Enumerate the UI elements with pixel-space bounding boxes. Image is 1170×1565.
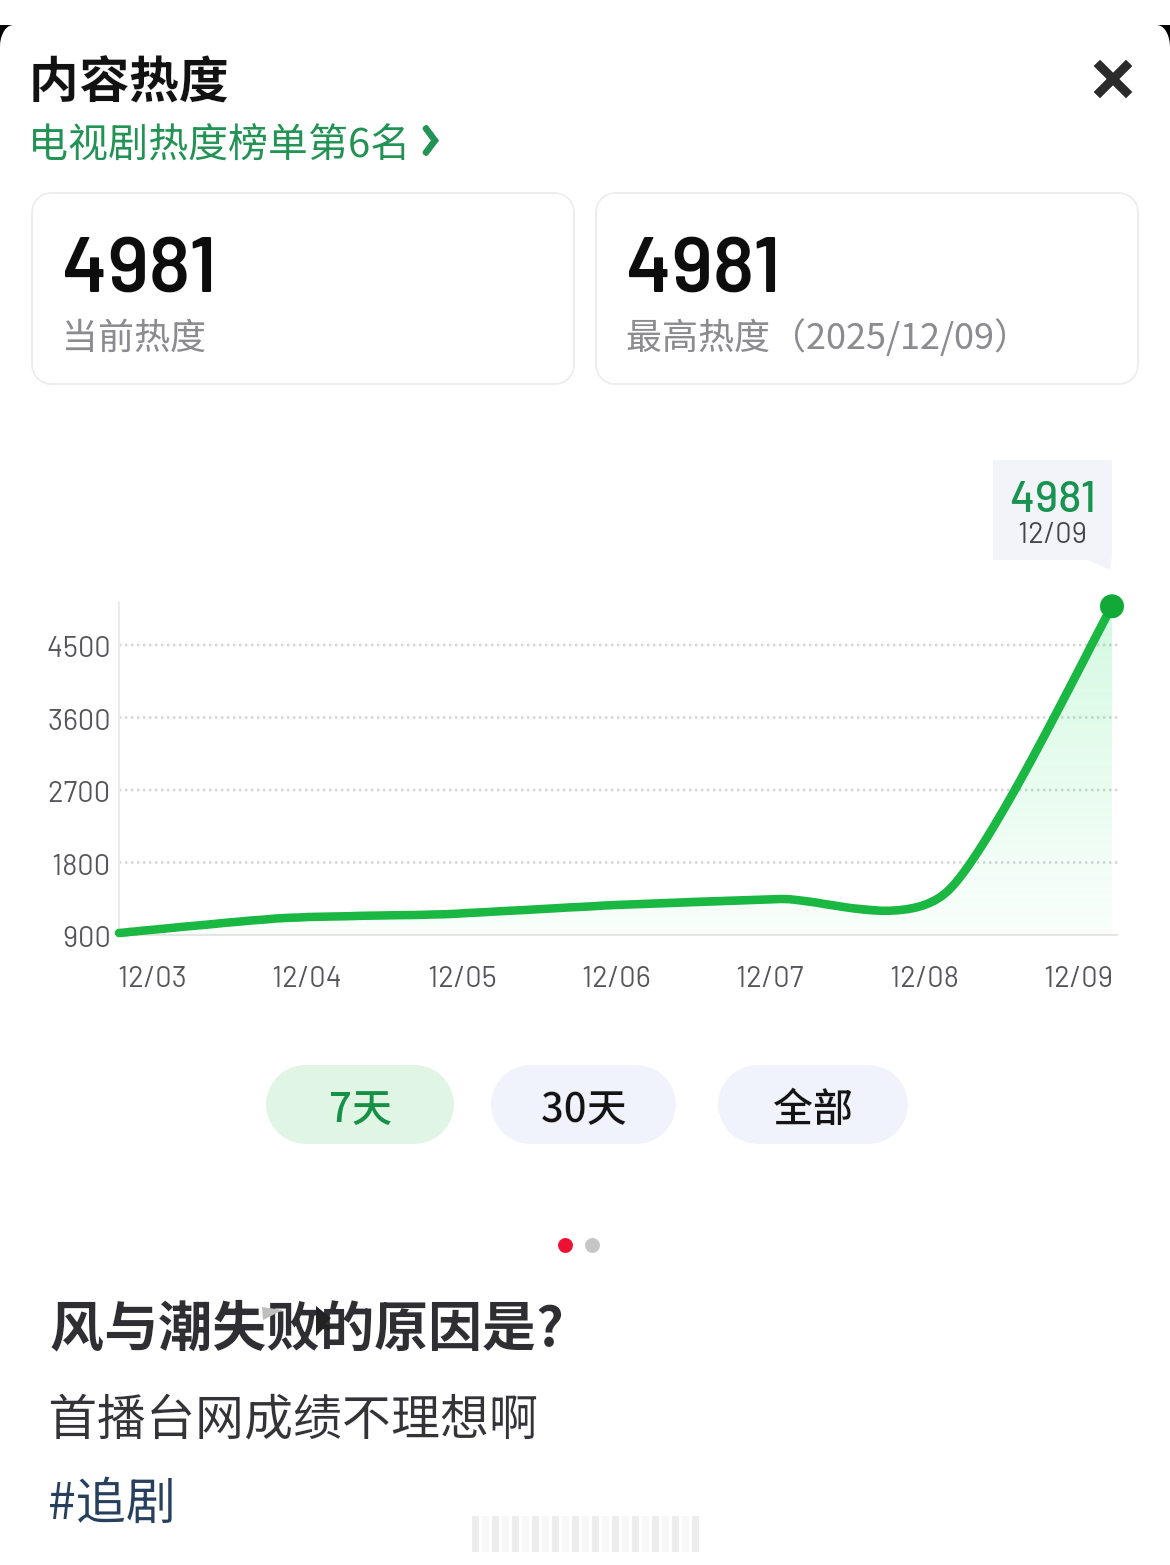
staticText: 首播台网成绩不理想啊 bbox=[48, 1378, 539, 1449]
staticText: 7天 bbox=[329, 1076, 392, 1134]
button[interactable]: #追剧 bbox=[48, 1461, 176, 1533]
staticText: 12/09 bbox=[1044, 958, 1113, 993]
staticText: 全部 bbox=[773, 1076, 853, 1134]
staticText: 12/03 bbox=[118, 958, 187, 993]
staticText: 电视剧热度榜单第6名 bbox=[28, 111, 411, 169]
staticText: 4981 bbox=[1010, 468, 1096, 521]
staticText: 3600 bbox=[48, 701, 111, 736]
staticText: 12/08 bbox=[890, 958, 959, 993]
staticText: 4981 bbox=[626, 214, 781, 308]
button[interactable]: 全部 bbox=[718, 1065, 908, 1144]
staticText: 最高热度（2025/12/09） bbox=[626, 307, 1031, 359]
staticText: 12/05 bbox=[428, 958, 497, 993]
staticText: 12/07 bbox=[736, 958, 804, 993]
staticText: 4981 bbox=[62, 214, 217, 308]
staticText: 12/06 bbox=[582, 958, 651, 993]
button[interactable]: 7天 bbox=[266, 1065, 454, 1144]
staticText: 1800 bbox=[52, 846, 111, 881]
staticText: 30天 bbox=[541, 1076, 627, 1134]
staticText: 4500 bbox=[47, 628, 111, 663]
staticText: 900 bbox=[63, 918, 111, 953]
staticText: 12/09 bbox=[1018, 514, 1087, 549]
button[interactable]: 4981 bbox=[595, 192, 1139, 385]
staticText: 当前热度 bbox=[62, 307, 207, 359]
button[interactable]: 4981 bbox=[31, 192, 575, 385]
staticText: 内容热度 bbox=[29, 40, 229, 112]
button[interactable]: 30天 bbox=[491, 1065, 676, 1144]
staticText: 2700 bbox=[48, 773, 111, 808]
button[interactable]: 电视剧热度榜单第6名 bbox=[28, 111, 438, 169]
staticText: 风与潮失败的原因是? bbox=[50, 1283, 564, 1361]
button[interactable]: Close bbox=[1064, 30, 1162, 128]
staticText: 12/04 bbox=[272, 958, 342, 993]
